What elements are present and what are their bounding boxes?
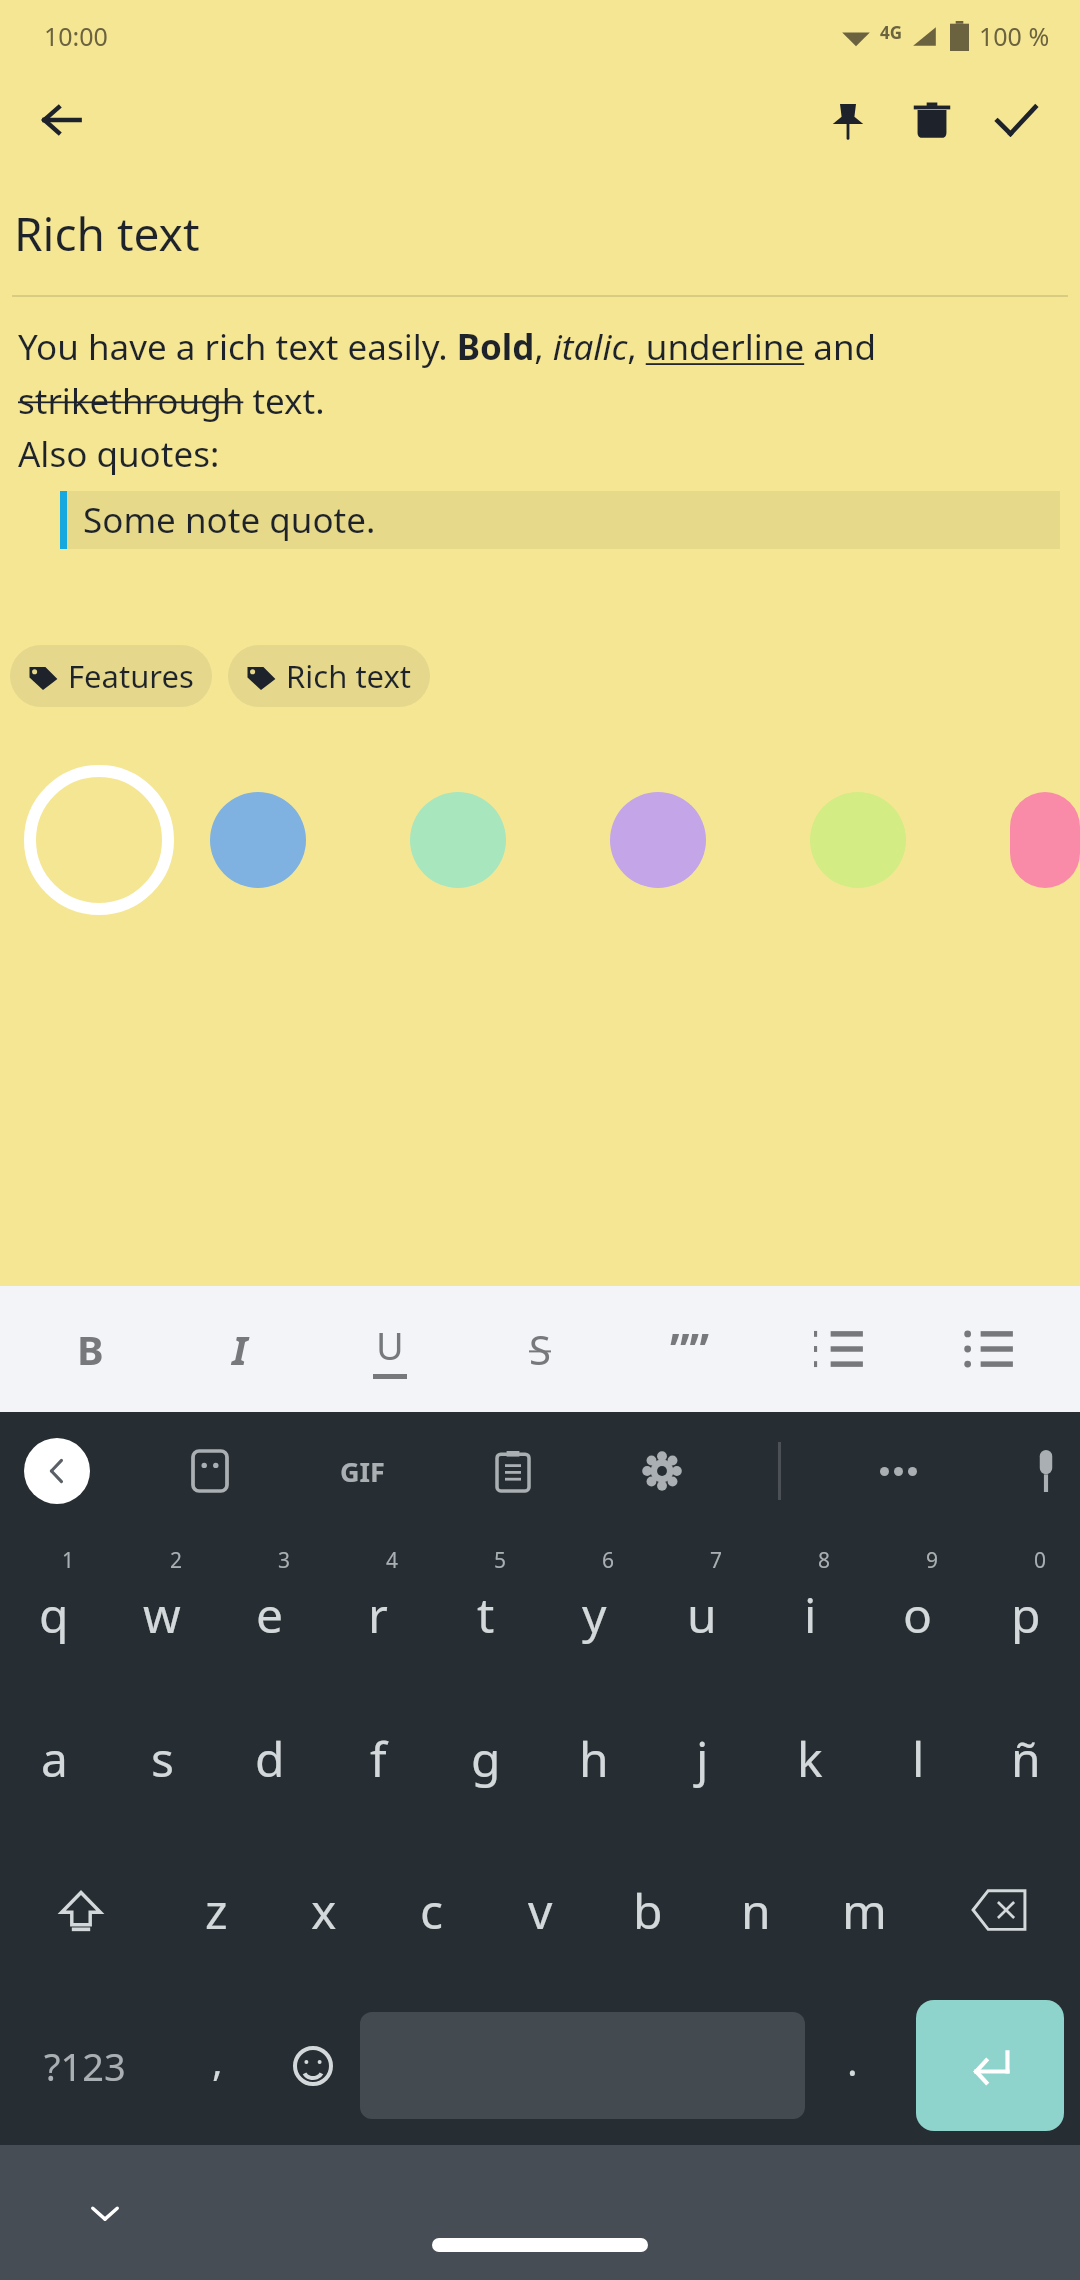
staticText: b	[633, 1878, 663, 1943]
staticText: h	[579, 1726, 609, 1791]
staticText: I	[232, 1322, 248, 1376]
button[interactable]: Color 5	[1010, 792, 1080, 888]
button[interactable]: 8	[756, 1530, 864, 1682]
button[interactable]: 0	[972, 1530, 1080, 1682]
button[interactable]: Close toolbar	[24, 1438, 90, 1504]
staticText: 7	[710, 1546, 723, 1575]
staticText: q	[39, 1582, 69, 1647]
button[interactable]: Hide keyboard	[70, 2178, 140, 2248]
button[interactable]: GIF	[327, 1436, 397, 1506]
button[interactable]: g	[432, 1682, 540, 1834]
staticText: S	[529, 1322, 551, 1376]
button[interactable]: Color 1	[210, 792, 306, 888]
button[interactable]: 1	[0, 1530, 108, 1682]
button[interactable]: b	[594, 1834, 702, 1986]
button[interactable]: h	[540, 1682, 648, 1834]
button[interactable]: ñ	[972, 1682, 1080, 1834]
button[interactable]: Italic	[180, 1286, 300, 1412]
staticText: z	[205, 1878, 228, 1943]
button[interactable]: s	[108, 1682, 216, 1834]
button[interactable]: k	[756, 1682, 864, 1834]
button[interactable]: m	[810, 1834, 918, 1986]
button[interactable]: Clipboard	[481, 1439, 545, 1503]
staticText: 1	[62, 1546, 75, 1575]
staticText: a	[41, 1726, 68, 1791]
button[interactable]: 2	[108, 1530, 216, 1682]
staticText: t	[477, 1582, 495, 1647]
button[interactable]: Color 2	[410, 792, 506, 888]
button[interactable]: Rich text	[228, 645, 430, 707]
staticText: r	[368, 1582, 388, 1647]
staticText: c	[420, 1878, 444, 1943]
button[interactable]: c	[378, 1834, 486, 1986]
staticText: g	[471, 1726, 501, 1791]
staticText: o	[903, 1582, 933, 1647]
button[interactable]: ?123	[0, 1986, 170, 2145]
button[interactable]: 7	[648, 1530, 756, 1682]
button[interactable]: No color	[24, 765, 174, 915]
button[interactable]: d	[216, 1682, 324, 1834]
button[interactable]: n	[702, 1834, 810, 1986]
staticText: m	[842, 1878, 887, 1943]
button[interactable]: z	[162, 1834, 270, 1986]
staticText: ?123	[44, 2040, 126, 2092]
button[interactable]: Strikethrough	[480, 1286, 600, 1412]
staticText: Some note quote.	[83, 496, 376, 544]
staticText: ””	[670, 1319, 710, 1379]
button[interactable]: .	[805, 1986, 900, 2145]
button[interactable]: Color 4	[810, 792, 906, 888]
button[interactable]: Quote	[630, 1286, 750, 1412]
button[interactable]: Save	[974, 78, 1058, 162]
button[interactable]: 4	[324, 1530, 432, 1682]
button[interactable]: Pin	[806, 78, 890, 162]
button[interactable]: Bullet list	[930, 1286, 1050, 1412]
staticText: U	[376, 1319, 404, 1371]
staticText: You have a rich text easily. Bold, itali…	[18, 323, 1066, 477]
staticText: B	[77, 1322, 104, 1376]
staticText: .	[847, 2033, 858, 2087]
button[interactable]: More	[866, 1439, 930, 1503]
button[interactable]: j	[648, 1682, 756, 1834]
staticText: x	[311, 1878, 337, 1943]
button[interactable]: Emoji	[265, 1986, 360, 2145]
staticText: v	[528, 1878, 553, 1943]
button[interactable]: 6	[540, 1530, 648, 1682]
button[interactable]: Bold	[30, 1286, 150, 1412]
button[interactable]: Backspace	[918, 1834, 1080, 1986]
button[interactable]: Features	[10, 645, 212, 707]
button[interactable]: Underline	[330, 1286, 450, 1412]
staticText: s	[151, 1726, 174, 1791]
staticText: 3	[278, 1546, 291, 1575]
staticText: p	[1011, 1582, 1041, 1647]
button[interactable]: Color 3	[610, 792, 706, 888]
button[interactable]: v	[486, 1834, 594, 1986]
staticText: i	[804, 1582, 817, 1647]
button[interactable]: l	[864, 1682, 972, 1834]
staticText: 2	[170, 1546, 183, 1575]
button[interactable]: 5	[432, 1530, 540, 1682]
staticText: y	[582, 1582, 607, 1647]
staticText: n	[741, 1878, 771, 1943]
button[interactable]: ,	[170, 1986, 265, 2145]
button[interactable]: 9	[864, 1530, 972, 1682]
staticText: 5	[494, 1546, 507, 1575]
button[interactable]: f	[324, 1682, 432, 1834]
button[interactable]: Enter	[916, 2000, 1064, 2131]
staticText: GIF	[340, 1453, 385, 1490]
button[interactable]: Shift	[0, 1834, 162, 1986]
staticText: ,	[212, 2033, 223, 2087]
button[interactable]: Settings	[630, 1439, 694, 1503]
button[interactable]: Delete	[890, 78, 974, 162]
staticText: f	[370, 1726, 387, 1791]
button[interactable]: Back	[26, 84, 98, 156]
button[interactable]: x	[270, 1834, 378, 1986]
button[interactable]: Numbered list	[780, 1286, 900, 1412]
staticText: j	[696, 1726, 709, 1791]
staticText: d	[255, 1726, 285, 1791]
button[interactable]: 3	[216, 1530, 324, 1682]
button[interactable]: Voice input	[1014, 1439, 1078, 1503]
button[interactable]: Stickers	[178, 1439, 242, 1503]
button[interactable]: a	[0, 1682, 108, 1834]
staticText: l	[912, 1726, 925, 1791]
